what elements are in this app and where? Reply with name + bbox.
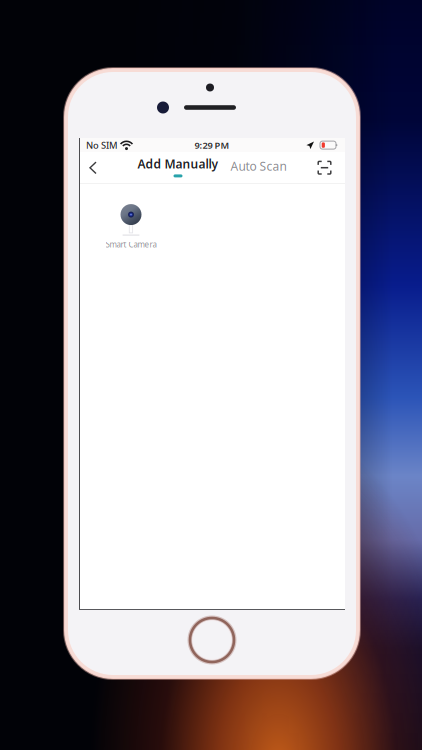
button[interactable]: Smart Camera — [103, 202, 159, 252]
button[interactable]: Scan QR code — [313, 152, 335, 183]
button[interactable]: Back — [82, 152, 104, 183]
staticText: 9:29 PM — [194, 139, 229, 151]
staticText: Add Manually — [137, 156, 218, 172]
button[interactable]: Auto Scan — [230, 152, 286, 183]
staticText: Smart Camera — [105, 239, 156, 250]
button[interactable]: Add Manually — [137, 152, 218, 183]
staticText: Auto Scan — [230, 158, 286, 174]
staticText: No SIM — [86, 139, 118, 151]
